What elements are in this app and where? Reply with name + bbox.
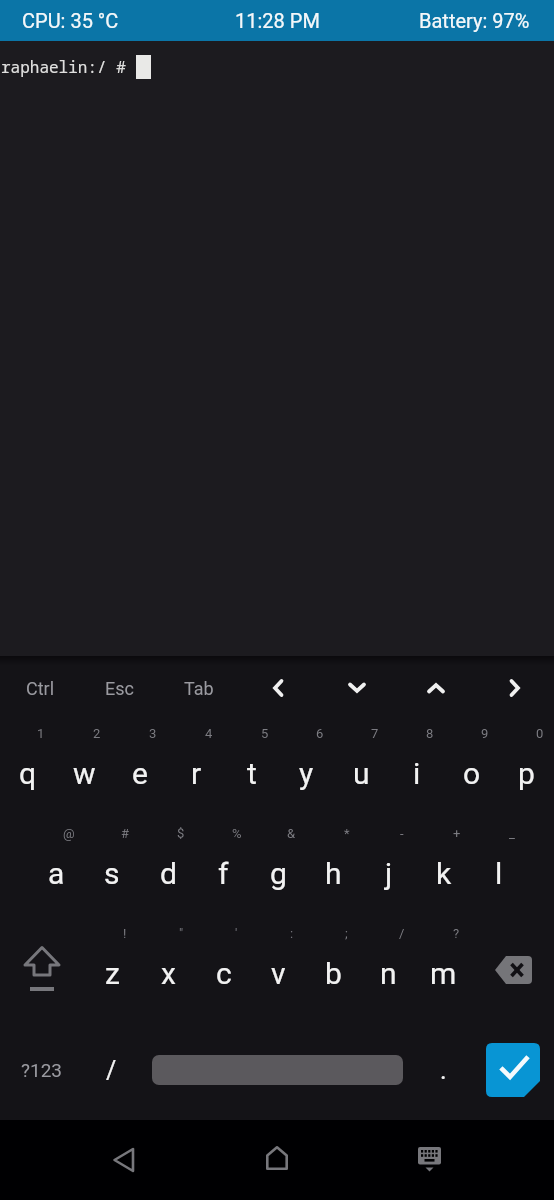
button[interactable]: - bbox=[361, 820, 416, 920]
staticText: e bbox=[132, 756, 148, 791]
staticText: ! bbox=[123, 926, 127, 941]
staticText: 7 bbox=[371, 726, 379, 741]
staticText: + bbox=[453, 826, 461, 841]
staticText: a bbox=[48, 856, 65, 891]
button[interactable] bbox=[0, 920, 84, 1020]
staticText: # bbox=[121, 826, 130, 841]
button[interactable]: ; bbox=[306, 920, 361, 1020]
button[interactable] bbox=[471, 920, 554, 1020]
staticText: h bbox=[325, 856, 342, 891]
staticText: & bbox=[287, 826, 296, 841]
button[interactable] bbox=[266, 1146, 288, 1170]
staticText: n bbox=[380, 956, 397, 991]
button[interactable]: 1 bbox=[0, 720, 56, 820]
staticText: 2 bbox=[93, 726, 101, 741]
staticText: b bbox=[325, 956, 342, 991]
staticText: Tab bbox=[184, 678, 214, 699]
staticText: y bbox=[299, 756, 314, 791]
button[interactable]: / bbox=[361, 920, 416, 1020]
staticText: d bbox=[160, 856, 177, 891]
staticText: / bbox=[106, 1056, 117, 1085]
button[interactable]: & bbox=[251, 820, 306, 920]
staticText: : bbox=[290, 926, 294, 941]
staticText: . bbox=[440, 1056, 447, 1085]
staticText: " bbox=[179, 926, 184, 941]
button[interactable] bbox=[238, 656, 317, 720]
staticText: t bbox=[247, 756, 257, 791]
button[interactable]: 7 bbox=[334, 720, 389, 820]
staticText: ' bbox=[235, 926, 238, 941]
button[interactable]: @ bbox=[28, 820, 84, 920]
staticText: 1 bbox=[37, 726, 45, 741]
button[interactable]: ? bbox=[416, 920, 471, 1020]
button[interactable]: _ bbox=[471, 820, 526, 920]
staticText: g bbox=[270, 856, 287, 891]
staticText: raphaelin:/ # bbox=[1, 56, 136, 78]
staticText: / bbox=[399, 926, 405, 941]
button[interactable]: ! bbox=[84, 920, 140, 1020]
staticText: Esc bbox=[105, 678, 134, 699]
button[interactable]: : bbox=[251, 920, 306, 1020]
staticText: x bbox=[161, 956, 176, 991]
button[interactable] bbox=[396, 656, 475, 720]
button[interactable]: ' bbox=[196, 920, 251, 1020]
button[interactable] bbox=[317, 656, 396, 720]
button[interactable]: " bbox=[140, 920, 196, 1020]
button[interactable]: 2 bbox=[56, 720, 112, 820]
staticText: $ bbox=[177, 826, 185, 841]
button[interactable]: . bbox=[416, 1020, 471, 1120]
staticText: 8 bbox=[426, 726, 434, 741]
staticText: 0 bbox=[536, 726, 544, 741]
staticText: 5 bbox=[261, 726, 269, 741]
staticText: 3 bbox=[149, 726, 157, 741]
button[interactable]: 5 bbox=[224, 720, 279, 820]
staticText: 11:28 PM bbox=[235, 9, 320, 32]
button[interactable]: + bbox=[416, 820, 471, 920]
button[interactable]: Esc bbox=[80, 656, 159, 720]
button[interactable]: # bbox=[84, 820, 140, 920]
staticText: z bbox=[105, 956, 120, 991]
button[interactable]: $ bbox=[140, 820, 196, 920]
staticText: * bbox=[344, 826, 350, 841]
staticText: f bbox=[218, 856, 229, 891]
staticText: c bbox=[216, 956, 232, 991]
staticText: w bbox=[73, 756, 96, 791]
button[interactable] bbox=[139, 1020, 416, 1120]
staticText: o bbox=[463, 756, 481, 791]
staticText: _ bbox=[509, 826, 515, 841]
staticText: i bbox=[413, 756, 421, 791]
button[interactable]: Tab bbox=[159, 656, 238, 720]
staticText: q bbox=[19, 756, 37, 791]
staticText: m bbox=[430, 956, 457, 991]
staticText: CPU: 35 °C bbox=[22, 9, 119, 32]
staticText: v bbox=[271, 956, 286, 991]
staticText: % bbox=[232, 826, 242, 841]
button[interactable]: / bbox=[84, 1020, 139, 1120]
staticText: ?123 bbox=[21, 1059, 63, 1081]
staticText: - bbox=[400, 826, 404, 841]
button[interactable]: % bbox=[196, 820, 251, 920]
staticText: j bbox=[385, 856, 393, 891]
button[interactable]: * bbox=[306, 820, 361, 920]
button[interactable]: 9 bbox=[444, 720, 499, 820]
button[interactable]: 0 bbox=[499, 720, 554, 820]
staticText: s bbox=[104, 856, 120, 891]
button[interactable]: Ctrl bbox=[0, 656, 80, 720]
staticText: Battery: 97% bbox=[419, 9, 530, 32]
button[interactable]: 4 bbox=[168, 720, 224, 820]
staticText: r bbox=[191, 756, 202, 791]
staticText: p bbox=[518, 756, 535, 791]
staticText: @ bbox=[63, 826, 75, 841]
staticText: ? bbox=[453, 926, 460, 941]
button[interactable]: 3 bbox=[112, 720, 168, 820]
button[interactable] bbox=[111, 1147, 136, 1173]
button[interactable]: ?123 bbox=[0, 1020, 84, 1120]
button[interactable] bbox=[475, 656, 554, 720]
button[interactable] bbox=[471, 1020, 554, 1120]
staticText: k bbox=[436, 856, 452, 891]
button[interactable] bbox=[418, 1147, 442, 1173]
button[interactable]: 8 bbox=[389, 720, 444, 820]
staticText: 6 bbox=[316, 726, 324, 741]
staticText: Ctrl bbox=[26, 678, 55, 699]
button[interactable]: 6 bbox=[279, 720, 334, 820]
